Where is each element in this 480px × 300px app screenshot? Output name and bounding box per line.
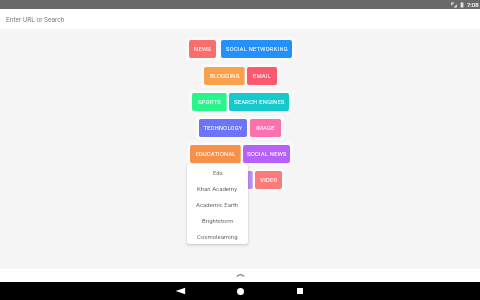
staticText: SOCIAL NETWORKING xyxy=(226,46,288,53)
button[interactable]: SOCIAL NEWS xyxy=(243,145,290,163)
button[interactable]: SOCIAL NETWORKING xyxy=(221,40,292,58)
staticText: Khan Academy xyxy=(197,185,238,192)
button[interactable]: IMAGE xyxy=(250,119,281,137)
staticText: SPORTS xyxy=(198,99,221,106)
staticText: SOCIAL NEWS xyxy=(247,151,287,158)
button[interactable]: SPORTS xyxy=(192,93,227,111)
button[interactable]: Home xyxy=(228,282,252,300)
button[interactable]: Academic Earth xyxy=(187,196,248,212)
staticText: 7:08 xyxy=(467,1,479,8)
staticText: BLOGGING xyxy=(210,73,240,80)
button[interactable]: Khan Academy xyxy=(187,180,248,196)
button[interactable]: BLOGGING xyxy=(204,67,245,85)
button[interactable]: EDUCATIONAL xyxy=(190,145,241,163)
staticText: EDUCATIONAL xyxy=(195,151,236,158)
button[interactable]: EMAIL xyxy=(247,67,277,85)
staticText: Enter URL or Search xyxy=(6,16,65,24)
button[interactable]: Brightstorm xyxy=(187,212,248,228)
staticText: VIDEO xyxy=(260,177,278,184)
button[interactable]: Back xyxy=(168,282,192,300)
staticText: NEWS xyxy=(194,46,211,53)
staticText: EMAIL xyxy=(253,73,271,80)
staticText: IMAGE xyxy=(256,125,275,132)
button[interactable]: VIDEO xyxy=(255,171,282,189)
button[interactable]: Recent apps xyxy=(288,282,312,300)
button[interactable]: TECHNOLOGY xyxy=(199,119,247,137)
staticText: Brightstorm xyxy=(202,217,234,224)
staticText: Cosmolearning xyxy=(197,233,238,240)
button[interactable]: NEWS xyxy=(189,40,216,58)
staticText: TECHNOLOGY xyxy=(203,125,243,132)
staticText: Academic Earth xyxy=(196,201,239,208)
staticText: SEARCH ENGINES xyxy=(234,99,285,106)
staticText: Edx xyxy=(213,169,223,176)
button[interactable]: JOB SEARCH xyxy=(198,171,253,189)
button[interactable]: SEARCH ENGINES xyxy=(229,93,289,111)
button[interactable]: Edx xyxy=(187,164,248,180)
button[interactable]: Enter URL or Search xyxy=(0,9,480,29)
button[interactable]: Expand xyxy=(231,269,249,282)
button[interactable]: Cosmolearning xyxy=(187,228,248,244)
